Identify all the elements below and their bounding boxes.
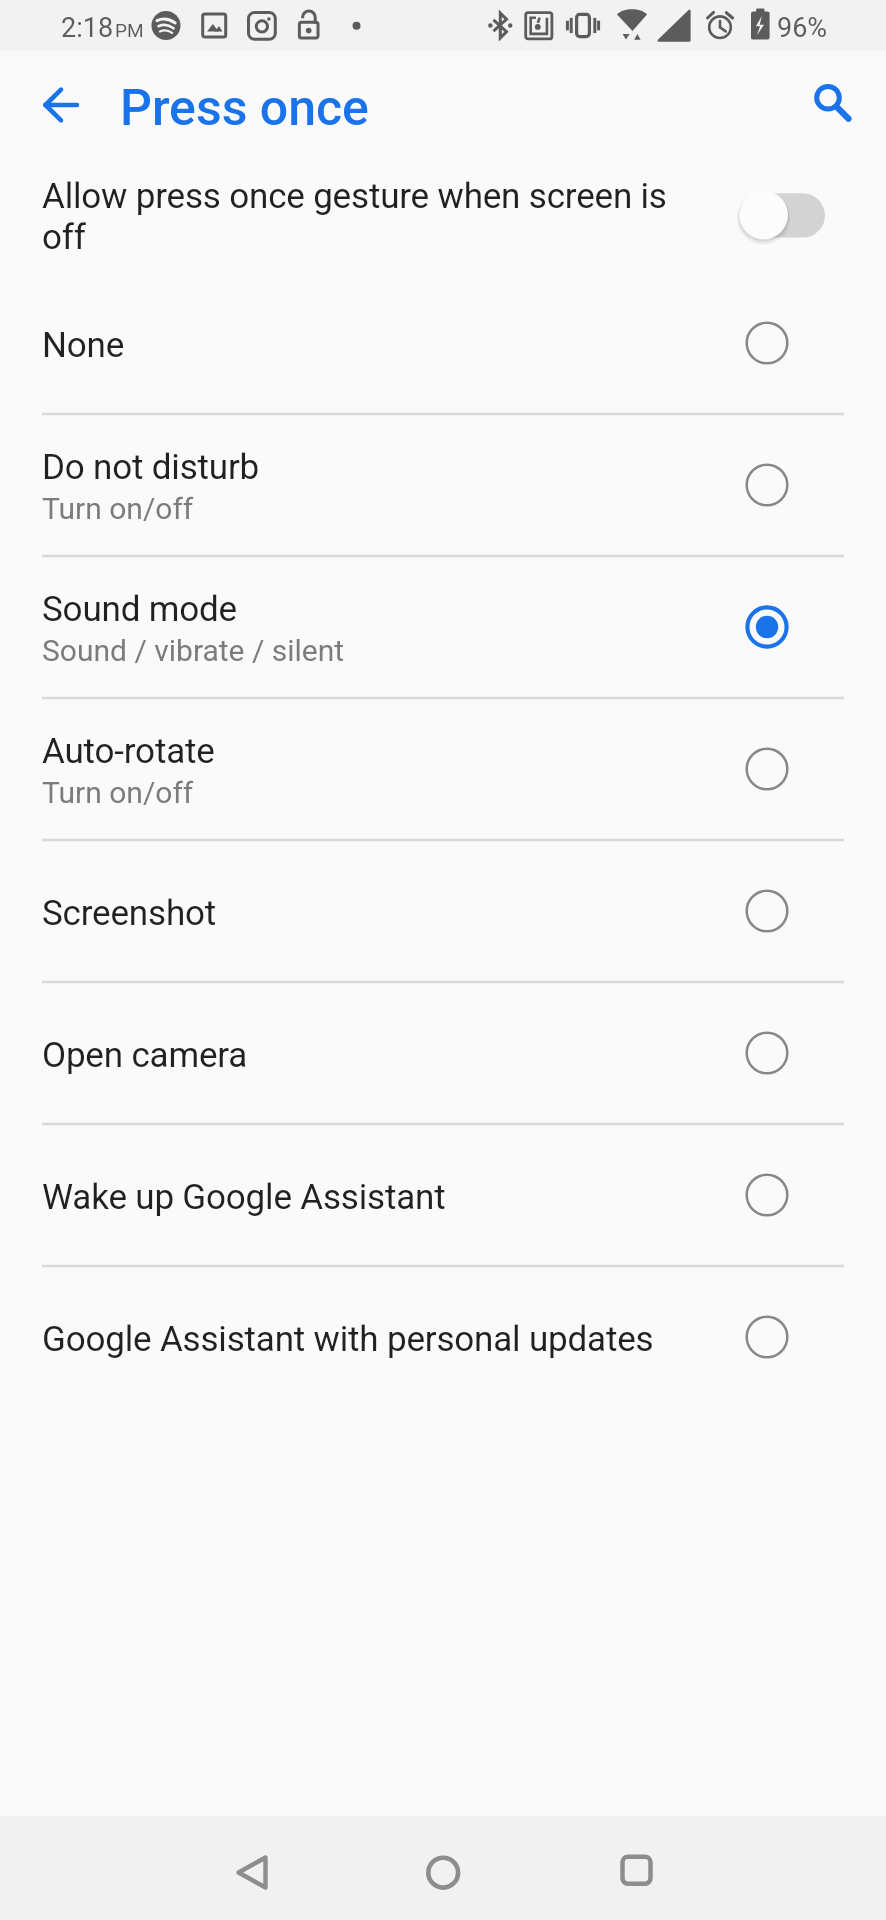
staticText: Do not disturb xyxy=(42,447,260,488)
staticText: Turn on/off xyxy=(42,491,194,526)
staticText: Press once xyxy=(120,79,369,138)
staticText: Google Assistant with personal updates xyxy=(42,1319,654,1360)
button[interactable]: Allow press once gesture when screen is … xyxy=(0,154,886,279)
staticText: Screenshot xyxy=(42,893,217,934)
staticText: 96% xyxy=(777,12,828,44)
button[interactable]: Home xyxy=(403,1832,483,1912)
button[interactable]: Open camera xyxy=(0,982,886,1124)
staticText: Allow press once gesture when screen is … xyxy=(42,176,702,258)
staticText: Sound / vibrate / silent xyxy=(42,633,345,668)
button[interactable]: Sound mode xyxy=(0,556,886,698)
button[interactable]: Google Assistant with personal updates xyxy=(0,1266,886,1408)
staticText: Turn on/off xyxy=(42,775,194,810)
button[interactable]: Search xyxy=(792,62,864,134)
button[interactable]: Recent apps xyxy=(595,1832,675,1912)
button[interactable]: None xyxy=(0,272,886,414)
staticText: Auto-rotate xyxy=(42,731,215,772)
staticText: Wake up Google Assistant xyxy=(42,1177,446,1218)
staticText: 2:18 xyxy=(61,12,114,44)
staticText: PM xyxy=(115,19,144,41)
button[interactable]: Navigate up xyxy=(22,69,94,141)
button[interactable]: Screenshot xyxy=(0,840,886,982)
staticText: None xyxy=(42,325,125,366)
button[interactable]: Allow press once gesture, off xyxy=(741,191,837,251)
button[interactable]: Do not disturb xyxy=(0,414,886,556)
staticText: Sound mode xyxy=(42,589,237,630)
button[interactable]: Wake up Google Assistant xyxy=(0,1124,886,1266)
button[interactable]: Back xyxy=(212,1832,292,1912)
staticText: Open camera xyxy=(42,1035,248,1076)
button[interactable]: Auto-rotate xyxy=(0,698,886,840)
